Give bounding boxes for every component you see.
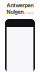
staticText: subtitle line here xyxy=(6,11,33,15)
staticText: Antwerpen Nulgen xyxy=(6,2,33,15)
